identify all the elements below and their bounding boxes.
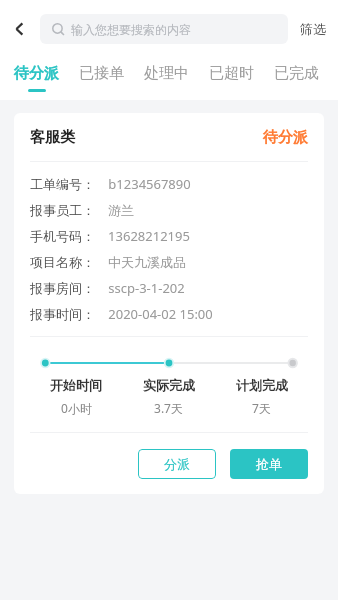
staticText: 已超时 (209, 64, 254, 83)
staticText: 实际完成 (143, 377, 195, 393)
button[interactable]: Back (0, 0, 40, 58)
button[interactable]: 已完成 (272, 58, 321, 92)
staticText: 待分派 (14, 64, 59, 83)
staticText: 客服类 (30, 128, 75, 147)
button[interactable]: 筛选 (288, 0, 338, 58)
staticText: sscp-3-1-202 (108, 279, 185, 297)
staticText: 工单编号： (30, 176, 95, 192)
staticText: 处理中 (144, 64, 189, 83)
staticText: 已接单 (79, 64, 124, 83)
staticText: 报事时间： (30, 306, 95, 322)
staticText: 开始时间 (50, 377, 102, 393)
staticText: 待分派 (263, 128, 308, 147)
staticText: 已完成 (274, 64, 319, 83)
staticText: 游兰 (108, 202, 134, 218)
staticText: 计划完成 (236, 377, 288, 393)
staticText: 3.7天 (154, 400, 183, 416)
staticText: 项目名称： (30, 254, 95, 270)
button[interactable]: 抢单 (230, 449, 308, 479)
staticText: 13628212195 (108, 227, 190, 245)
button[interactable]: 客服类 (14, 113, 324, 494)
staticText: 抢单 (256, 456, 282, 472)
button[interactable]: 分派 (138, 449, 216, 479)
staticText: 0小时 (61, 400, 92, 416)
staticText: 报事房间： (30, 280, 95, 296)
button[interactable]: 待分派 (12, 58, 61, 92)
staticText: 筛选 (300, 21, 326, 37)
staticText: 手机号码： (30, 228, 95, 244)
button[interactable]: 已超时 (207, 58, 256, 92)
staticText: 报事员工： (30, 202, 95, 218)
staticText: b1234567890 (108, 175, 191, 193)
button[interactable]: 处理中 (142, 58, 191, 92)
staticText: 分派 (164, 456, 190, 472)
staticText: 7天 (252, 400, 271, 416)
button[interactable]: 输入您想要搜索的内容 (40, 14, 288, 44)
button[interactable]: 已接单 (77, 58, 126, 92)
staticText: 输入您想要搜索的内容 (71, 22, 191, 37)
staticText: 2020-04-02 15:00 (108, 305, 213, 323)
staticText: 中天九溪成品 (108, 254, 186, 270)
